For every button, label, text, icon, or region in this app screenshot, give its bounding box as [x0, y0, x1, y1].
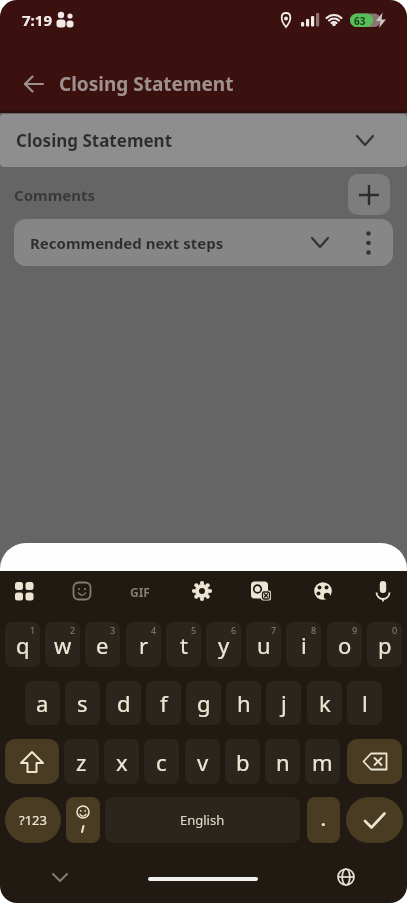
button[interactable]: s [65, 681, 100, 725]
staticText: . [321, 809, 326, 831]
button[interactable] [175, 571, 233, 615]
staticText: 6 [231, 624, 237, 636]
button[interactable] [0, 571, 59, 615]
staticText: p [378, 630, 392, 660]
staticText: f [160, 688, 168, 718]
button[interactable]: v [185, 739, 220, 784]
button[interactable]: n [265, 739, 300, 784]
button[interactable] [66, 797, 100, 843]
staticText: English [180, 811, 225, 829]
staticText: i [301, 630, 307, 660]
staticText: 5 [191, 624, 197, 636]
staticText: ?123 [19, 811, 47, 829]
button[interactable]: g [186, 681, 221, 725]
button[interactable] [117, 571, 175, 615]
staticText: s [77, 688, 88, 718]
staticText: Recommended next steps [30, 233, 224, 253]
button[interactable] [326, 861, 366, 889]
button[interactable] [40, 861, 80, 889]
button[interactable] [233, 571, 291, 615]
staticText: GIF [130, 584, 150, 600]
button[interactable] [291, 571, 349, 615]
staticText: e [96, 630, 109, 660]
staticText: v [197, 747, 209, 777]
button[interactable] [347, 739, 402, 784]
staticText: h [237, 688, 251, 718]
staticText: z [76, 747, 87, 777]
staticText: 8 [311, 624, 317, 636]
staticText: r [139, 630, 149, 660]
button[interactable]: c [144, 739, 179, 784]
staticText: 7:19 [22, 10, 52, 30]
staticText: 7 [271, 624, 277, 636]
button[interactable] [5, 739, 59, 784]
staticText: 9 [352, 624, 358, 636]
button[interactable]: Closing Statement [0, 114, 407, 167]
staticText: w [54, 630, 72, 660]
button[interactable]: p [367, 622, 402, 667]
button[interactable]: u [246, 622, 281, 667]
button[interactable]: q [5, 622, 40, 667]
button[interactable]: b [225, 739, 260, 784]
button[interactable]: d [106, 681, 141, 725]
button[interactable]: x [104, 739, 139, 784]
button[interactable] [59, 571, 117, 615]
button[interactable]: w [45, 622, 80, 667]
button[interactable] [346, 797, 403, 843]
button[interactable]: ?123 [5, 797, 61, 843]
staticText: y [218, 630, 230, 660]
button[interactable]: e [85, 622, 120, 667]
button[interactable]: h [226, 681, 261, 725]
button[interactable]: English [105, 797, 300, 843]
button[interactable]: k [307, 681, 342, 725]
button[interactable] [16, 66, 52, 102]
staticText: Comments [14, 185, 96, 205]
button[interactable]: Recommended next steps [14, 219, 393, 266]
staticText: g [197, 688, 211, 718]
button[interactable]: j [266, 681, 301, 725]
staticText: Closing Statement [59, 71, 234, 97]
button[interactable]: . [307, 797, 340, 843]
staticText: 4 [151, 624, 157, 636]
button[interactable] [348, 174, 390, 215]
button[interactable]: y [206, 622, 241, 667]
button[interactable]: r [126, 622, 161, 667]
button[interactable]: a [25, 681, 60, 725]
button[interactable]: o [327, 622, 362, 667]
button[interactable]: l [347, 681, 382, 725]
staticText: 63 [354, 14, 366, 28]
button[interactable]: i [286, 622, 321, 667]
button[interactable]: f [146, 681, 181, 725]
staticText: o [338, 630, 352, 660]
staticText: m [312, 747, 333, 777]
button[interactable]: t [166, 622, 201, 667]
staticText: 2 [70, 624, 76, 636]
staticText: 0 [392, 624, 398, 636]
staticText: k [319, 688, 331, 718]
staticText: q [16, 630, 30, 660]
staticText: a [36, 688, 49, 718]
staticText: u [257, 630, 271, 660]
staticText: 1 [30, 624, 36, 636]
staticText: 3 [110, 624, 116, 636]
staticText: l [362, 688, 368, 718]
staticText: c [156, 747, 167, 777]
staticText: j [281, 688, 287, 718]
button[interactable]: m [305, 739, 340, 784]
staticText: x [116, 747, 128, 777]
staticText: d [117, 688, 131, 718]
button[interactable] [349, 571, 407, 615]
staticText: n [276, 747, 290, 777]
button[interactable]: z [64, 739, 99, 784]
staticText: Closing Statement [16, 129, 173, 152]
staticText: t [180, 630, 188, 660]
staticText: b [236, 747, 250, 777]
